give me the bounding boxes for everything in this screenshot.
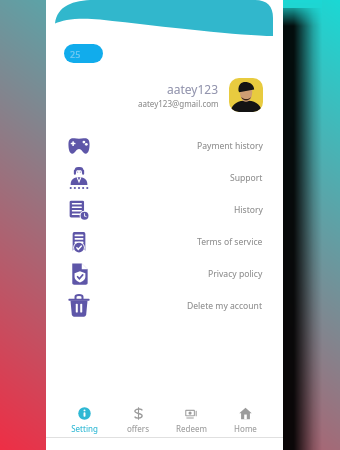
button[interactable]: aatey123 (46, 78, 263, 112)
staticText: Payment history (197, 140, 263, 152)
button[interactable]: Terms of service (46, 226, 283, 258)
staticText: History (234, 204, 263, 216)
staticText: Terms of service (197, 236, 263, 248)
staticText: Privacy policy (208, 268, 263, 280)
staticText: Support (230, 172, 263, 184)
staticText: aatey123@gmail.com (138, 98, 219, 109)
staticText: offers (127, 423, 149, 434)
button[interactable]: offers (112, 407, 164, 434)
staticText: Redeem (176, 423, 207, 434)
staticText: Delete my account (187, 300, 263, 312)
staticText: aatey123 (167, 81, 219, 97)
button[interactable]: Privacy policy (46, 258, 283, 290)
button[interactable]: Support (46, 162, 283, 194)
button[interactable]: Home (219, 407, 271, 434)
staticText: Home (234, 423, 257, 434)
button[interactable]: 25 (64, 44, 103, 63)
button[interactable]: History (46, 194, 283, 226)
button[interactable]: Delete my account (46, 290, 283, 322)
staticText: Setting (71, 423, 98, 434)
button[interactable]: Redeem (165, 407, 217, 434)
staticText: 25 (70, 48, 81, 60)
button[interactable]: Payment history (46, 130, 283, 162)
button[interactable]: Setting (58, 407, 110, 434)
